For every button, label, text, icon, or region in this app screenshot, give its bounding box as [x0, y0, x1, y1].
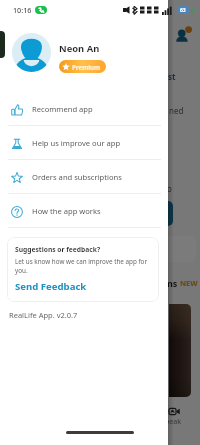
button[interactable]: Orders and subscriptions [0, 160, 168, 194]
staticText: Recommend app [32, 104, 93, 114]
staticText: 63 [180, 7, 186, 14]
staticText: ned [169, 105, 184, 116]
staticText: 10:16 [13, 5, 32, 15]
staticText: ns [167, 277, 178, 289]
staticText: Premium [72, 63, 101, 71]
button[interactable]: Recommend app [0, 92, 168, 126]
button[interactable]: Help us improve our app [0, 126, 168, 160]
button[interactable]: How the app works [0, 194, 168, 228]
staticText: Orders and subscriptions [32, 172, 122, 182]
staticText: Neon An [59, 42, 100, 55]
staticText: RealLife App. v2.0.7 [9, 310, 78, 320]
staticText: Help us improve our app [32, 138, 121, 148]
button[interactable]: Suggestions or feedback? [7, 237, 159, 302]
button[interactable]: Neon An [12, 33, 168, 72]
staticText: NEW [180, 278, 198, 288]
staticText: Let us know how we can improve the app f… [15, 257, 153, 275]
staticText: peak [165, 417, 181, 427]
staticText: o [167, 183, 172, 194]
staticText: How the app works [32, 206, 101, 216]
staticText: Suggestions or feedback? [15, 245, 101, 254]
staticText: st [168, 71, 176, 82]
button[interactable]: Premium [62, 60, 101, 73]
button[interactable]: Send Feedback [15, 280, 87, 293]
